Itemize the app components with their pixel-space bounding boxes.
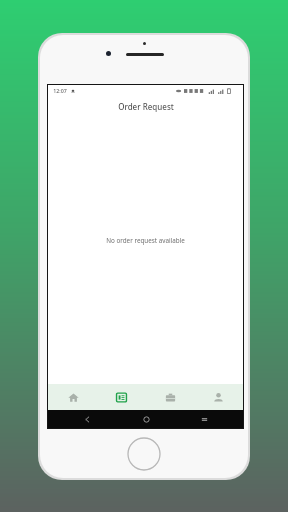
staticText: No order request available bbox=[106, 236, 185, 245]
button[interactable]: Back bbox=[67, 410, 107, 428]
button[interactable]: Recent apps bbox=[184, 410, 224, 428]
button[interactable]: Home bbox=[126, 410, 166, 428]
button[interactable]: Jobs bbox=[146, 384, 194, 410]
staticText: 12:07 bbox=[53, 87, 67, 94]
button[interactable]: Home bbox=[49, 384, 97, 410]
staticText: Order Request bbox=[118, 101, 174, 112]
button[interactable]: Profile bbox=[194, 384, 242, 410]
button[interactable]: Order Request bbox=[97, 384, 145, 410]
